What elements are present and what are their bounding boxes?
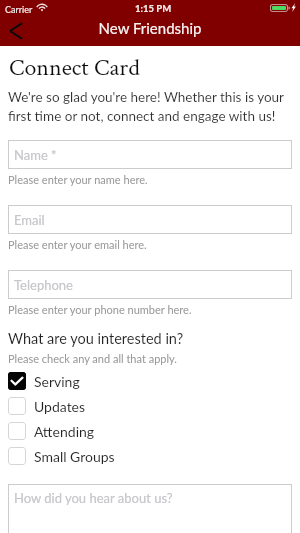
staticText: What are you interested in?: [8, 330, 184, 347]
button[interactable]: Email: [8, 205, 292, 234]
button[interactable]: Updates: [0, 396, 300, 416]
button[interactable]: Telephone: [8, 270, 292, 299]
button[interactable]: Attending: [0, 421, 300, 441]
staticText: Please check any and all that apply.: [8, 352, 177, 365]
button[interactable]: How did you hear about us?: [8, 484, 292, 533]
staticText: Attending: [34, 423, 95, 440]
button[interactable]: Name *: [8, 140, 292, 169]
staticText: Carrier: [5, 4, 33, 15]
staticText: Please enter your email here.: [8, 238, 147, 251]
staticText: We're so glad you're here! Whether this …: [8, 89, 292, 124]
staticText: Please enter your phone number here.: [8, 303, 192, 316]
button[interactable]: Serving: [0, 371, 300, 391]
staticText: 1:15 PM: [135, 3, 172, 14]
staticText: Telephone: [14, 277, 73, 293]
staticText: Serving: [34, 373, 80, 390]
staticText: How did you hear about us?: [14, 490, 173, 506]
staticText: Email: [14, 212, 45, 228]
staticText: Small Groups: [34, 448, 115, 465]
staticText: Connect Card: [9, 52, 140, 83]
staticText: Please enter your name here.: [8, 173, 148, 186]
staticText: New Friendship: [0, 19, 300, 37]
staticText: Name *: [14, 147, 57, 163]
button[interactable]: Small Groups: [0, 446, 300, 466]
button[interactable]: Back: [0, 19, 32, 43]
staticText: Updates: [34, 398, 86, 415]
